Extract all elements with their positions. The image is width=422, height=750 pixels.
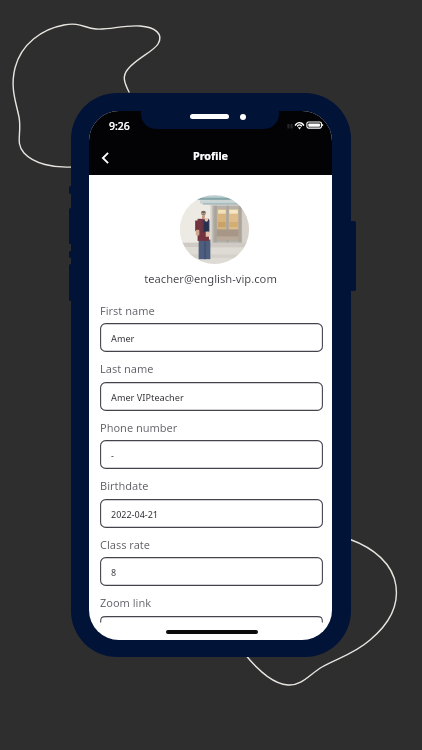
- staticText: Amer VIPteacher: [111, 391, 184, 403]
- button[interactable]: Amer VIPteacher: [100, 382, 323, 411]
- staticText: 8: [111, 566, 117, 578]
- staticText: Birthdate: [100, 478, 149, 493]
- staticText: 9:26: [109, 119, 130, 133]
- button[interactable]: -: [100, 440, 323, 469]
- button[interactable]: 8: [100, 557, 323, 586]
- staticText: 2022-04-21: [111, 508, 158, 520]
- staticText: -: [111, 449, 114, 461]
- staticText: Class rate: [100, 537, 151, 552]
- staticText: Zoom link: [100, 595, 152, 610]
- staticText: teacher@english-vip.com: [89, 271, 332, 286]
- staticText: Profile: [89, 148, 332, 163]
- button: Back: [89, 139, 332, 175]
- staticText: Last name: [100, 361, 154, 376]
- staticText: Amer: [111, 332, 135, 344]
- button[interactable]: [100, 616, 323, 640]
- staticText: Phone number: [100, 420, 178, 435]
- staticText: First name: [100, 303, 155, 318]
- button[interactable]: 2022-04-21: [100, 499, 323, 528]
- button[interactable]: Back: [90, 139, 117, 175]
- button[interactable]: Amer: [100, 323, 323, 352]
